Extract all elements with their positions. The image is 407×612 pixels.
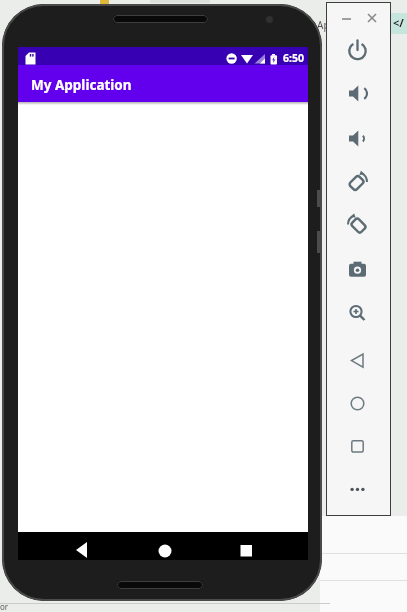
button[interactable]	[343, 390, 372, 419]
button[interactable]	[343, 37, 372, 66]
button[interactable]	[343, 211, 372, 240]
staticText: 6:50	[283, 51, 304, 65]
button[interactable]	[236, 540, 256, 560]
button[interactable]	[343, 432, 372, 461]
button[interactable]	[340, 11, 354, 25]
button[interactable]	[72, 540, 92, 560]
button[interactable]	[343, 125, 372, 154]
button[interactable]	[365, 11, 379, 25]
button[interactable]	[343, 299, 372, 328]
staticText: My Application	[31, 76, 132, 94]
button[interactable]	[155, 540, 175, 560]
button[interactable]	[343, 168, 372, 197]
button[interactable]	[343, 475, 372, 504]
button[interactable]	[343, 256, 372, 285]
staticText: Ap	[317, 18, 330, 32]
staticText: </	[393, 15, 404, 30]
button[interactable]	[343, 347, 372, 376]
staticText: or	[0, 601, 9, 612]
button[interactable]: My Application	[18, 65, 308, 102]
button[interactable]	[343, 80, 372, 109]
